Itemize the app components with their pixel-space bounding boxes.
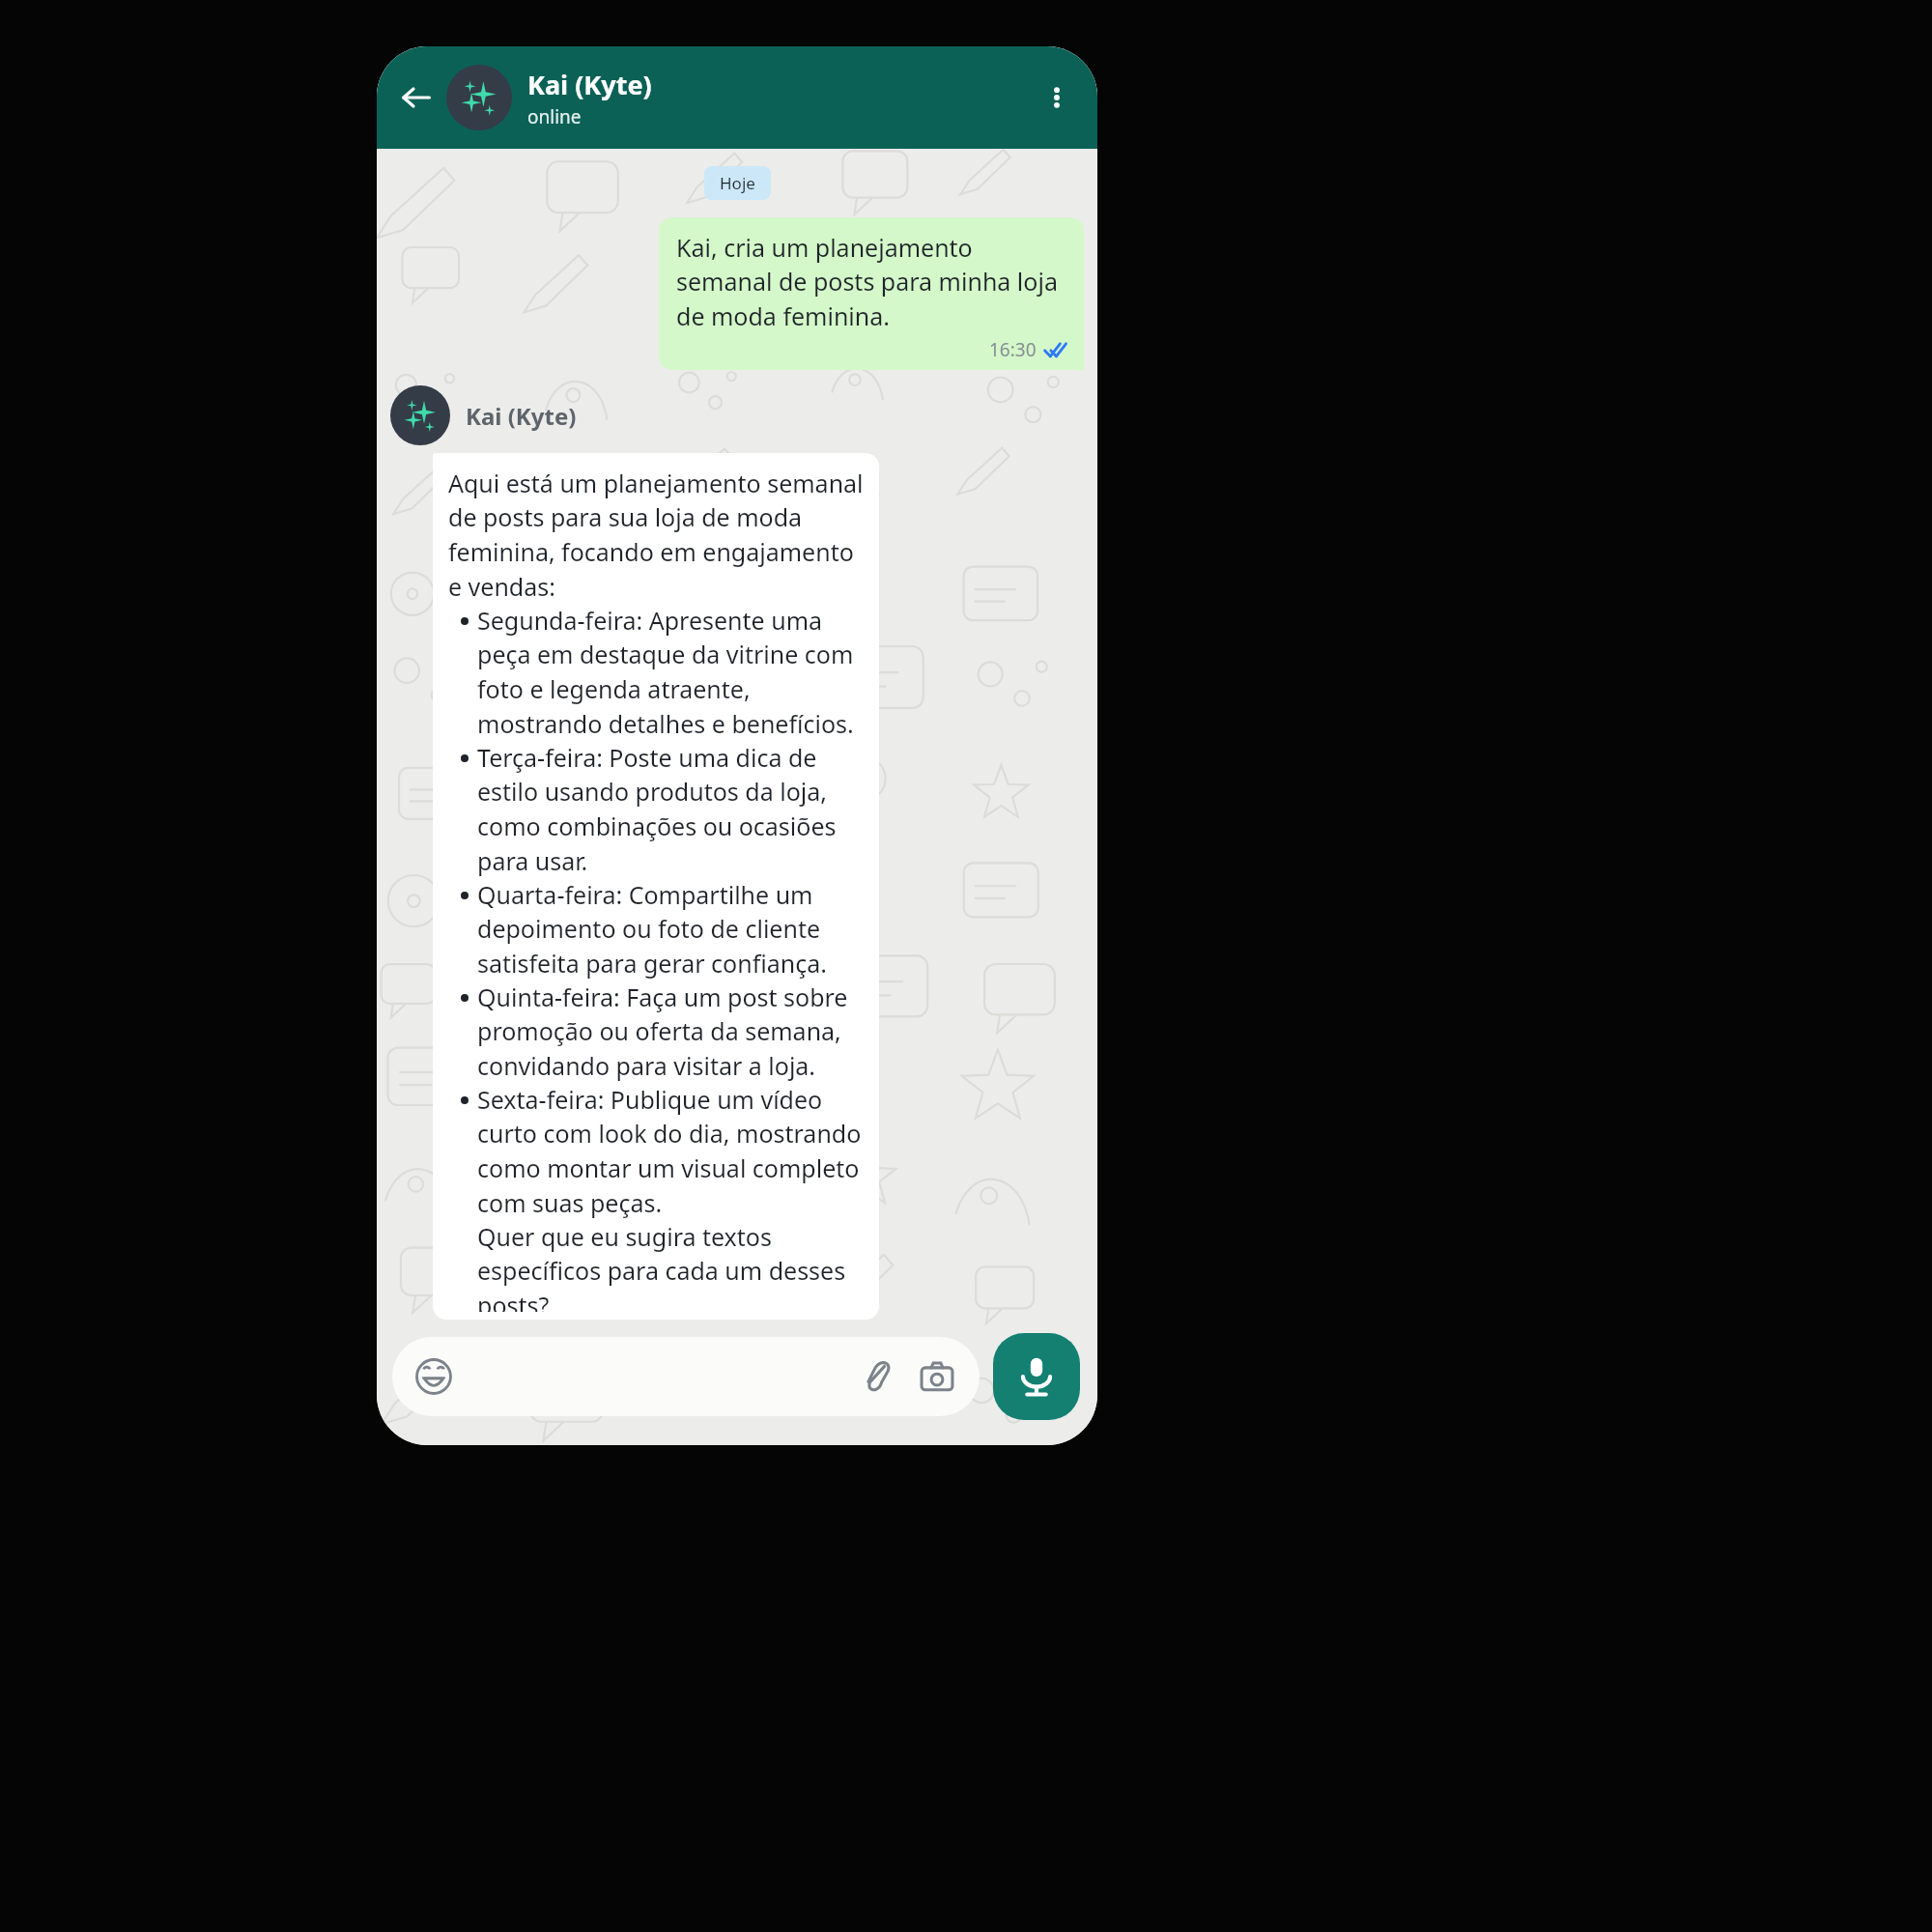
- button[interactable]: Attach: [856, 1355, 898, 1398]
- button[interactable]: Back: [394, 75, 439, 120]
- staticText: Kai (Kyte): [527, 67, 652, 102]
- staticText: Quarta-feira: Compartilhe um depoimento …: [477, 878, 867, 980]
- staticText: Quer que eu sugira textos específicos pa…: [477, 1220, 867, 1312]
- button[interactable]: Kai avatar: [390, 385, 450, 445]
- staticText: Aqui está um planejamento semanal de pos…: [448, 467, 867, 604]
- staticText: 16:30: [989, 337, 1037, 362]
- button[interactable]: Emoji: [392, 1337, 980, 1416]
- staticText: Kai (Kyte): [466, 400, 577, 432]
- staticText: Sexta-feira: Publique um vídeo curto com…: [477, 1083, 867, 1220]
- staticText: Hoje: [720, 172, 755, 194]
- button[interactable]: Contact avatar: [446, 65, 512, 130]
- button[interactable]: Camera: [916, 1355, 958, 1398]
- button[interactable]: Voice message: [993, 1333, 1080, 1420]
- button[interactable]: Emoji: [413, 1356, 454, 1397]
- button[interactable]: More options: [1034, 74, 1080, 121]
- staticText: Terça-feira: Poste uma dica de estilo us…: [477, 741, 867, 878]
- staticText: Kai, cria um planejamento semanal de pos…: [676, 231, 1070, 333]
- staticText: Quinta-feira: Faça um post sobre promoçã…: [477, 980, 867, 1083]
- button[interactable]: Aqui está um planejamento semanal de pos…: [433, 453, 879, 1320]
- staticText: online: [527, 104, 582, 129]
- button[interactable]: Hoje: [704, 166, 771, 200]
- button[interactable]: Kai, cria um planejamento semanal de pos…: [659, 217, 1084, 370]
- staticText: Segunda-feira: Apresente uma peça em des…: [477, 604, 867, 741]
- button[interactable]: Kai (Kyte): [527, 67, 1034, 129]
